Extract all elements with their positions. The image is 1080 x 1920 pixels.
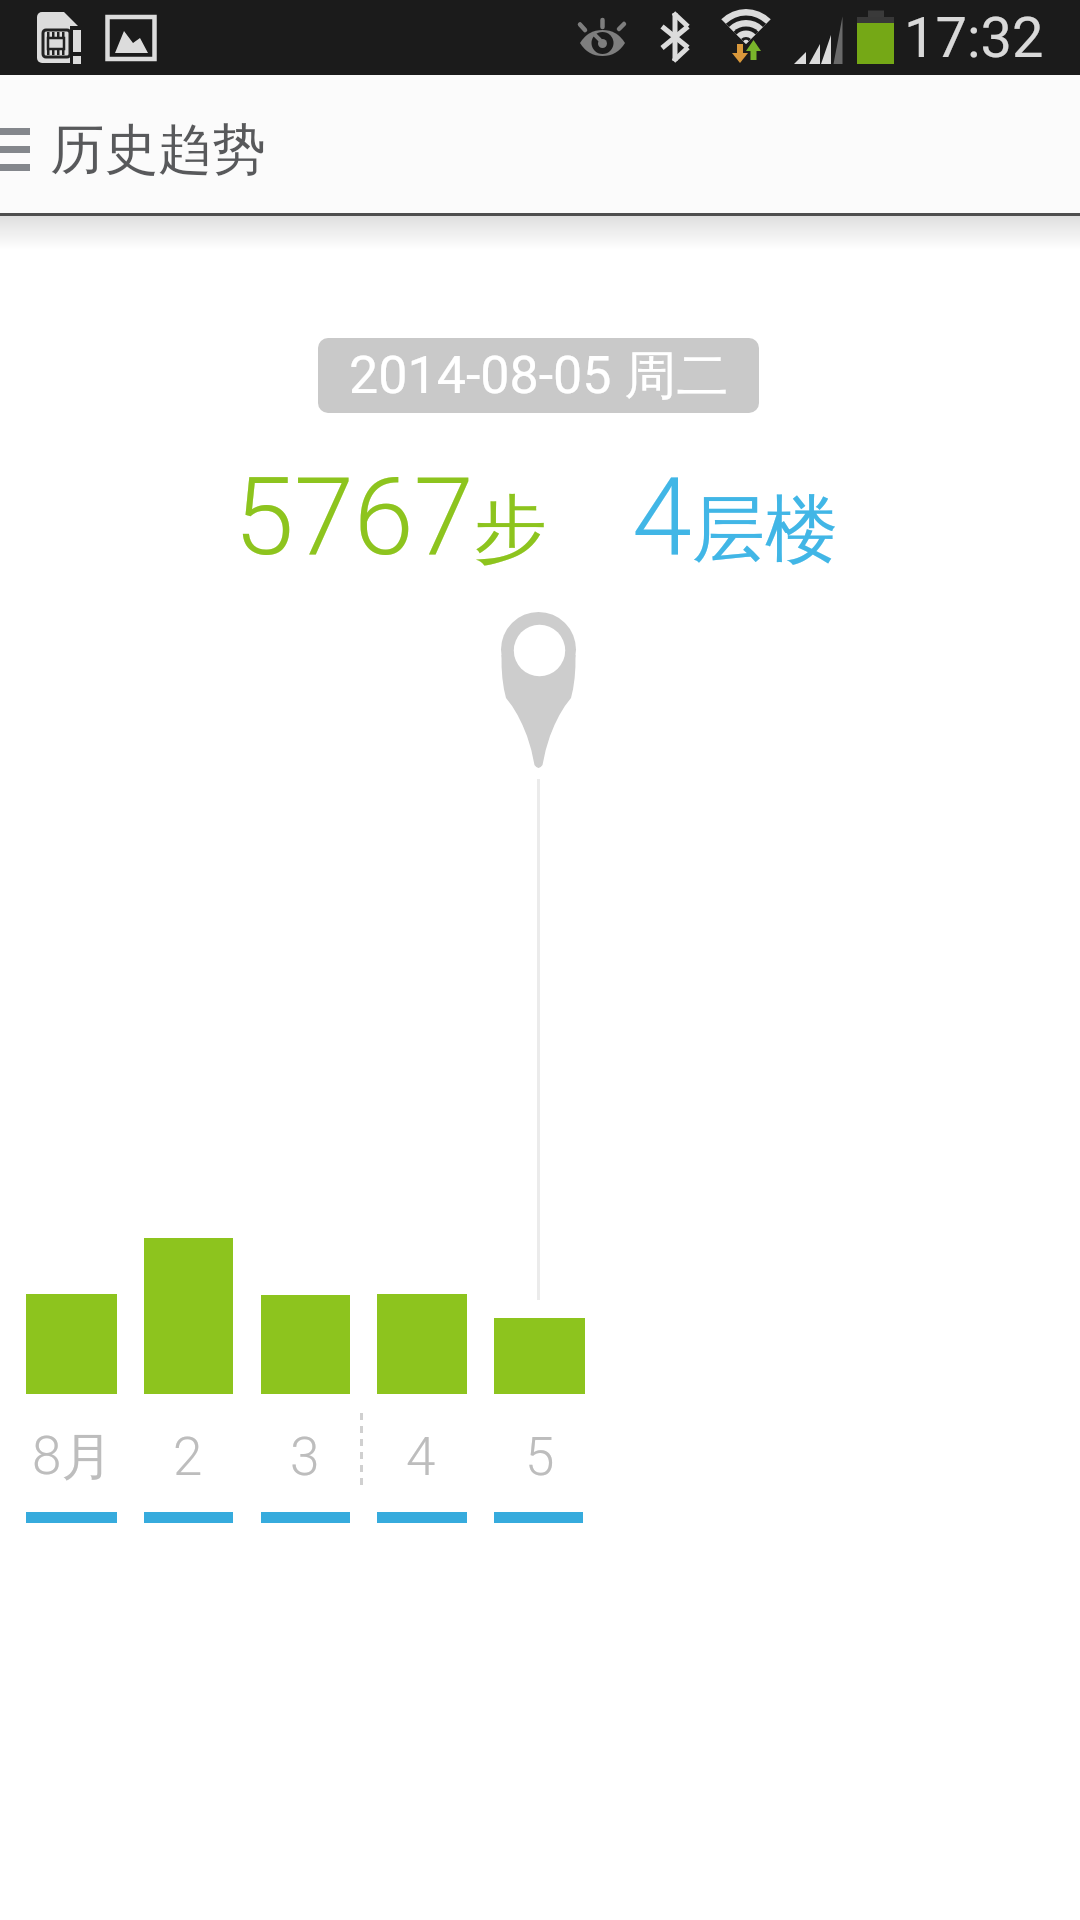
staticText: 4 bbox=[406, 1426, 436, 1488]
button[interactable]: 3 bbox=[235, 1412, 375, 1502]
staticText: 17:32 bbox=[904, 5, 1044, 71]
button[interactable]: 2014-08-05 周二 bbox=[318, 338, 759, 413]
staticText: 3 bbox=[290, 1426, 320, 1488]
button[interactable]: 4 bbox=[351, 1412, 491, 1502]
staticText: 8月 bbox=[32, 1425, 113, 1489]
staticText: 历史趋势 bbox=[50, 116, 266, 184]
button[interactable]: 8月 bbox=[2, 1412, 142, 1502]
button[interactable] bbox=[0, 128, 30, 171]
staticText: 2 bbox=[173, 1426, 203, 1488]
button[interactable]: 2 bbox=[118, 1412, 258, 1502]
staticText: 2014-08-05 周二 bbox=[349, 343, 729, 409]
staticText: 5767步 bbox=[234, 454, 547, 581]
staticText: 4层楼 bbox=[632, 454, 838, 581]
button[interactable]: 5 bbox=[470, 1412, 610, 1502]
staticText: 5 bbox=[525, 1426, 555, 1488]
